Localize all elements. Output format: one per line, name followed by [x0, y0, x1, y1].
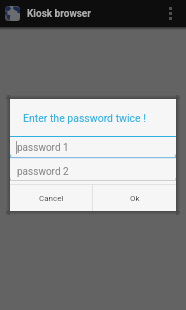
button[interactable]: More options [159, 0, 181, 27]
staticText: Kiosk browser [27, 8, 91, 20]
staticText: Ok [130, 194, 140, 203]
staticText: password 1 [17, 142, 69, 154]
button[interactable]: Ok [93, 185, 176, 211]
staticText: Cancel [39, 194, 64, 203]
staticText: password 2 [17, 166, 69, 178]
button[interactable]: Cancel [10, 185, 92, 211]
staticText: Enter the password twice ! [23, 112, 146, 124]
